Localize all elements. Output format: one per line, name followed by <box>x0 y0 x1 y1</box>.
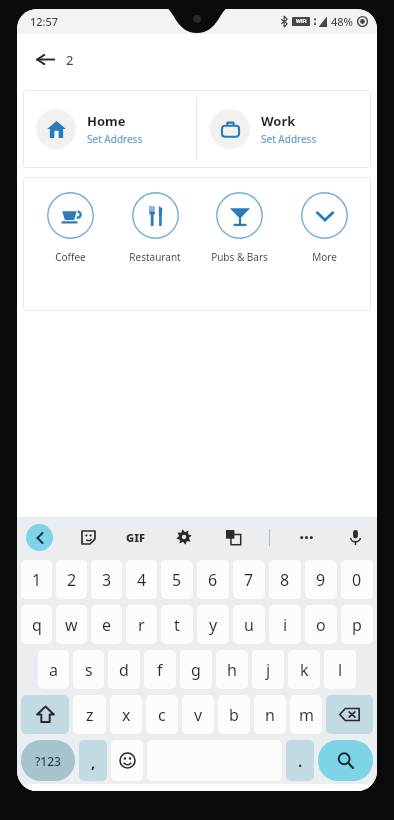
staticText: Work <box>261 112 296 130</box>
button[interactable]: Back <box>26 524 53 551</box>
staticText: u <box>244 614 254 636</box>
button[interactable]: Work <box>197 90 371 168</box>
staticText: s <box>85 659 93 681</box>
button[interactable]: ?123 <box>21 740 75 781</box>
button[interactable]: g <box>180 650 212 689</box>
button[interactable]: Search <box>318 740 373 781</box>
button[interactable]: y <box>197 605 229 644</box>
button[interactable]: 1 <box>21 560 52 599</box>
button[interactable]: d <box>108 650 140 689</box>
button[interactable]: p <box>341 605 373 644</box>
button[interactable]: i <box>269 605 301 644</box>
staticText: o <box>316 614 326 636</box>
staticText: Pubs & Bars <box>211 250 268 264</box>
staticText: Restaurant <box>129 250 181 264</box>
staticText: a <box>49 659 58 681</box>
button[interactable]: t <box>161 605 193 644</box>
staticText: f <box>157 659 163 681</box>
button[interactable]: f <box>144 650 176 689</box>
button[interactable]: More options <box>293 524 319 550</box>
staticText: More <box>312 250 337 264</box>
button[interactable]: Voice input <box>342 524 368 550</box>
staticText: q <box>32 614 42 636</box>
staticText: , <box>91 752 96 772</box>
staticText: e <box>102 614 112 636</box>
button[interactable]: v <box>182 695 214 734</box>
staticText: 2 <box>67 569 77 591</box>
button[interactable]: 2 <box>56 560 87 599</box>
button[interactable]: Emoji <box>111 740 143 781</box>
button[interactable]: z <box>73 695 106 734</box>
button[interactable]: m <box>290 695 322 734</box>
staticText: l <box>338 659 343 681</box>
staticText: w <box>65 614 78 636</box>
staticText: 2 <box>66 51 74 69</box>
button[interactable]: 5 <box>161 560 193 599</box>
button[interactable]: 7 <box>233 560 265 599</box>
staticText: WiFi <box>296 18 307 25</box>
button[interactable]: Back <box>23 38 371 81</box>
button[interactable]: l <box>324 650 356 689</box>
button[interactable]: o <box>305 605 337 644</box>
staticText: Coffee <box>55 250 86 264</box>
staticText: 9 <box>316 569 326 591</box>
button[interactable]: Restaurant <box>114 192 196 264</box>
button[interactable]: a <box>38 650 69 689</box>
button[interactable]: . <box>286 740 314 781</box>
staticText: k <box>300 659 309 681</box>
staticText: t <box>174 614 180 636</box>
button[interactable]: x <box>110 695 142 734</box>
button[interactable]: Translate <box>220 524 246 550</box>
button[interactable]: 9 <box>305 560 337 599</box>
button[interactable]: u <box>233 605 265 644</box>
staticText: 0 <box>352 569 362 591</box>
button[interactable]: w <box>56 605 87 644</box>
button[interactable]: c <box>146 695 178 734</box>
button[interactable]: s <box>73 650 104 689</box>
staticText: 6 <box>208 569 218 591</box>
staticText: i <box>283 614 288 636</box>
button[interactable]: More <box>283 192 365 264</box>
staticText: y <box>209 614 218 636</box>
button[interactable]: 0 <box>341 560 373 599</box>
other: Back <box>36 50 55 69</box>
button[interactable]: Settings <box>171 524 197 550</box>
button[interactable]: r <box>126 605 157 644</box>
staticText: 3 <box>102 569 112 591</box>
button[interactable]: Stickers <box>75 524 101 550</box>
button[interactable]: h <box>216 650 248 689</box>
button[interactable]: , <box>79 740 107 781</box>
staticText: d <box>119 659 129 681</box>
staticText: v <box>194 704 203 726</box>
button[interactable]: Shift <box>21 695 69 734</box>
button[interactable]: 8 <box>269 560 301 599</box>
button[interactable]: k <box>288 650 320 689</box>
button[interactable]: GIF <box>123 527 148 548</box>
button[interactable]: 6 <box>197 560 229 599</box>
staticText: Home <box>87 112 126 130</box>
button[interactable]: n <box>254 695 286 734</box>
button[interactable]: 4 <box>126 560 157 599</box>
staticText: c <box>158 704 166 726</box>
button[interactable]: Pubs & Bars <box>198 192 280 264</box>
button[interactable]: b <box>218 695 250 734</box>
staticText: r <box>138 614 145 636</box>
button[interactable]: Backspace <box>326 695 373 734</box>
staticText: 12:57 <box>30 14 59 29</box>
staticText: 48% <box>331 14 353 29</box>
staticText: m <box>299 704 314 726</box>
staticText: z <box>86 704 94 726</box>
button[interactable]: q <box>21 605 52 644</box>
button[interactable]: Home <box>23 90 196 168</box>
staticText: 4 <box>137 569 147 591</box>
staticText: j <box>266 659 271 681</box>
staticText: n <box>265 704 275 726</box>
staticText: x <box>122 704 131 726</box>
button[interactable]: Coffee <box>29 192 111 264</box>
button[interactable]: e <box>91 605 122 644</box>
staticText: p <box>352 614 362 636</box>
staticText: 5 <box>172 569 182 591</box>
button[interactable]: j <box>252 650 284 689</box>
button[interactable]: 3 <box>91 560 122 599</box>
